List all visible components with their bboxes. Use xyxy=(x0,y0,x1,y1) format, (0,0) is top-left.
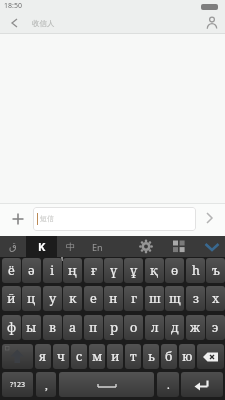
button[interactable] xyxy=(197,344,224,369)
staticText: ق xyxy=(9,241,17,253)
staticText: ц xyxy=(27,290,36,307)
button[interactable] xyxy=(135,236,157,257)
staticText: ә xyxy=(28,262,35,279)
button[interactable]: . xyxy=(157,372,179,397)
button[interactable]: ш xyxy=(145,286,164,311)
button[interactable]: ъ xyxy=(206,258,225,283)
button[interactable]: н xyxy=(104,286,123,311)
staticText: 短信 xyxy=(40,214,54,223)
staticText: һ xyxy=(192,262,200,279)
staticText: у xyxy=(49,290,57,307)
staticText: о xyxy=(130,319,138,336)
staticText: і xyxy=(50,262,55,279)
button[interactable]: і xyxy=(43,258,62,283)
staticText: к xyxy=(69,290,77,307)
button[interactable] xyxy=(202,13,222,33)
button[interactable]: ы xyxy=(22,315,41,340)
button[interactable]: р xyxy=(104,315,123,340)
button[interactable]: й xyxy=(2,286,21,311)
button[interactable]: л xyxy=(145,315,164,340)
button[interactable]: En xyxy=(84,236,110,257)
button[interactable]: э xyxy=(206,315,225,340)
button[interactable]: п xyxy=(84,315,103,340)
button[interactable]: г xyxy=(124,286,143,311)
button[interactable]: ق xyxy=(0,236,26,257)
button[interactable] xyxy=(4,12,26,34)
staticText: я xyxy=(39,348,47,365)
staticText: ң xyxy=(68,262,77,279)
button[interactable]: һ xyxy=(186,258,205,283)
button[interactable]: 中 xyxy=(57,236,83,257)
button[interactable]: д xyxy=(165,315,184,340)
button[interactable]: я xyxy=(35,344,51,369)
button[interactable]: ч xyxy=(53,344,69,369)
button[interactable] xyxy=(181,372,223,397)
staticText: т xyxy=(130,348,137,365)
staticText: р xyxy=(110,319,118,336)
button[interactable]: ө xyxy=(165,258,184,283)
staticText: и xyxy=(111,348,120,365)
button[interactable]: ь xyxy=(143,344,159,369)
staticText: қ xyxy=(150,262,159,279)
button[interactable]: в xyxy=(43,315,62,340)
staticText: ъ xyxy=(212,262,220,279)
staticText: 18:50 xyxy=(4,1,22,11)
staticText: ё xyxy=(8,262,15,279)
button[interactable]: ү xyxy=(104,258,123,283)
staticText: а xyxy=(69,319,77,336)
button[interactable]: ф xyxy=(2,315,21,340)
staticText: з xyxy=(193,290,199,307)
button[interactable] xyxy=(2,344,33,369)
staticText: En xyxy=(92,241,103,253)
staticText: 中 xyxy=(66,241,75,252)
button[interactable]: ?123 xyxy=(2,372,33,397)
button[interactable]: т xyxy=(125,344,141,369)
staticText: ш xyxy=(149,290,161,307)
staticText: 收信人 xyxy=(32,19,55,28)
staticText: ь xyxy=(148,348,155,365)
staticText: д xyxy=(171,319,179,336)
staticText: ж xyxy=(190,319,201,336)
button[interactable]: ұ xyxy=(124,258,143,283)
button[interactable]: з xyxy=(186,286,205,311)
button[interactable] xyxy=(168,236,190,257)
staticText: в xyxy=(49,319,56,336)
button[interactable] xyxy=(7,208,29,230)
button[interactable]: е xyxy=(84,286,103,311)
staticText: с xyxy=(76,348,83,365)
button[interactable]: м xyxy=(89,344,105,369)
staticText: б xyxy=(165,348,173,365)
button[interactable]: ю xyxy=(179,344,195,369)
button[interactable] xyxy=(199,208,219,228)
staticText: ү xyxy=(110,262,118,279)
button[interactable]: у xyxy=(43,286,62,311)
button[interactable]: ж xyxy=(186,315,205,340)
staticText: н xyxy=(109,290,118,307)
button[interactable]: 短信 xyxy=(33,207,196,231)
staticText: щ xyxy=(169,290,181,307)
button[interactable]: и xyxy=(107,344,123,369)
button[interactable]: х xyxy=(206,286,225,311)
button[interactable]: , xyxy=(36,372,56,397)
button[interactable]: б xyxy=(161,344,177,369)
button[interactable]: с xyxy=(71,344,87,369)
button[interactable] xyxy=(59,372,154,397)
button[interactable]: қ xyxy=(145,258,164,283)
button[interactable]: K xyxy=(26,236,57,257)
button[interactable] xyxy=(200,236,225,257)
button[interactable]: щ xyxy=(165,286,184,311)
button[interactable]: ё xyxy=(2,258,21,283)
button[interactable]: к xyxy=(63,286,82,311)
button[interactable]: а xyxy=(63,315,82,340)
staticText: K xyxy=(38,239,46,254)
staticText: ұ xyxy=(130,262,138,279)
button[interactable]: ғ xyxy=(84,258,103,283)
staticText: м xyxy=(92,348,103,365)
staticText: й xyxy=(7,290,16,307)
button[interactable]: ә xyxy=(22,258,41,283)
button[interactable]: ц xyxy=(22,286,41,311)
button[interactable]: ң xyxy=(63,258,82,283)
staticText: л xyxy=(151,319,159,336)
staticText: ө xyxy=(171,262,179,279)
button[interactable]: о xyxy=(124,315,143,340)
